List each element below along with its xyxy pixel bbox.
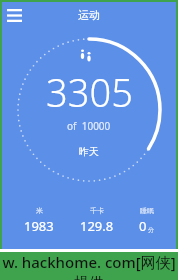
staticText: 运动 — [78, 8, 100, 22]
button[interactable]: 千卡 — [76, 205, 118, 236]
staticText: 千卡 — [90, 206, 104, 215]
button[interactable]: 米 — [20, 205, 58, 236]
staticText: 睡眠 — [140, 206, 154, 215]
staticText: 分 — [148, 226, 154, 234]
staticText: 3305 — [46, 66, 133, 118]
staticText: 0 — [139, 217, 147, 235]
button[interactable]: 睡眠 — [135, 205, 158, 236]
button[interactable]: Menu — [3, 4, 25, 26]
staticText: w. hackhome. com[网侠]提供 — [0, 252, 178, 280]
staticText: 米 — [36, 206, 43, 215]
staticText: of 10000 — [67, 119, 111, 133]
staticText: 129.8 — [80, 217, 114, 235]
staticText: 昨天 — [79, 145, 99, 158]
staticText: 1983 — [24, 217, 54, 235]
